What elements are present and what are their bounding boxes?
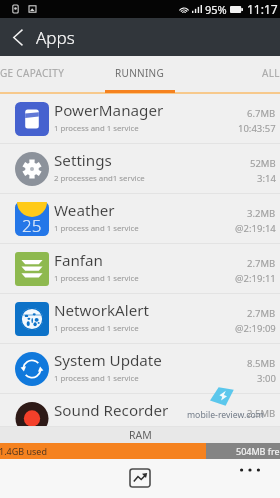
staticText: 1 process and 1 service: [54, 373, 139, 384]
staticText: Apps: [36, 26, 75, 49]
staticText: NetworkAlert: [54, 300, 150, 321]
staticText: 8.5MB: [247, 357, 276, 370]
staticText: 3.2MB: [247, 207, 276, 220]
staticText: Settings: [54, 150, 112, 171]
staticText: 3:00: [257, 372, 276, 385]
staticText: mobile-review.com: [187, 409, 264, 421]
button[interactable]: Back: [0, 18, 36, 56]
staticText: 52MB: [250, 157, 276, 170]
staticText: PowerManager: [54, 100, 164, 121]
button[interactable]: ALL: [262, 56, 280, 92]
staticText: 2.5MB: [247, 407, 276, 420]
staticText: 1 process and 1 service: [54, 123, 139, 134]
button[interactable]: System Update: [0, 344, 280, 394]
button[interactable]: More options: [230, 459, 270, 481]
staticText: @2:19:11: [235, 272, 276, 285]
staticText: 11:17: [247, 1, 278, 17]
staticText: 1 process and 1 service: [54, 323, 139, 334]
button[interactable]: PowerManager: [0, 94, 280, 144]
staticText: 2.7MB: [247, 307, 276, 320]
staticText: 2 processes and1 service: [54, 173, 145, 184]
button[interactable]: RUNNING: [105, 56, 175, 92]
staticText: Fanfan: [54, 250, 103, 271]
staticText: RAM: [129, 428, 152, 442]
staticText: 2.7MB: [247, 257, 276, 270]
staticText: GE CAPACITY: [0, 66, 65, 80]
staticText: ALL: [262, 66, 280, 80]
staticText: 504MB free: [236, 445, 280, 457]
button[interactable]: Fanfan: [0, 244, 280, 294]
staticText: 1 process and 1 service: [54, 273, 139, 284]
staticText: System Update: [54, 350, 162, 371]
staticText: 1.4GB used: [0, 445, 47, 457]
button[interactable]: GE CAPACITY: [0, 56, 100, 92]
staticText: 25: [22, 214, 42, 237]
staticText: 1 process and 1 service: [54, 423, 139, 434]
staticText: 10:43:57: [238, 122, 276, 135]
staticText: 3:14: [257, 172, 276, 185]
button[interactable]: Settings: [0, 144, 280, 194]
staticText: 1 process and 1 service: [54, 223, 139, 234]
staticText: Weather: [54, 200, 115, 221]
staticText: RUNNING: [115, 66, 165, 80]
staticText: @2:19:14: [235, 222, 276, 235]
staticText: 95%: [205, 2, 227, 17]
staticText: @2:19:09: [235, 322, 276, 335]
button[interactable]: 25: [0, 194, 280, 244]
button[interactable]: Usage chart: [122, 460, 158, 496]
staticText: 6.7MB: [247, 107, 276, 120]
button[interactable]: NetworkAlert: [0, 294, 280, 344]
button[interactable]: Sound Recorder: [0, 394, 280, 427]
staticText: Sound Recorder: [54, 400, 169, 421]
